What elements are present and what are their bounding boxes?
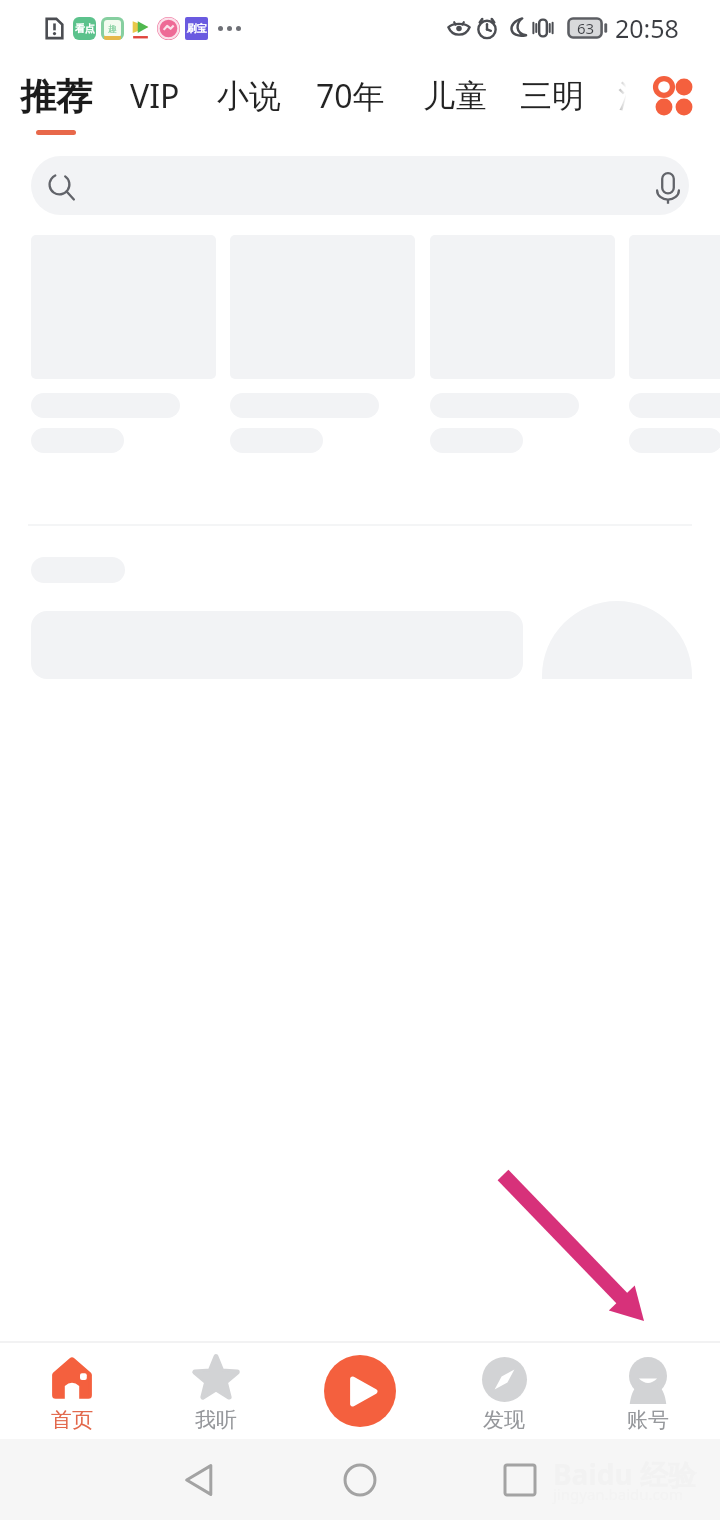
staticText: 我听: [195, 1407, 237, 1433]
staticText: 小说: [217, 76, 281, 116]
staticText: 账号: [627, 1407, 669, 1433]
button[interactable]: VIP: [107, 66, 203, 126]
button[interactable]: Categories: [642, 65, 706, 129]
button[interactable]: 推荐: [8, 66, 104, 126]
staticText: 看点: [75, 22, 95, 35]
button[interactable]: Back: [170, 1450, 230, 1510]
button[interactable]: Recents: [490, 1450, 550, 1510]
staticText: VIP: [130, 74, 180, 118]
staticText: 推荐: [20, 74, 92, 119]
staticText: 63: [577, 18, 595, 38]
staticText: 刷宝: [187, 22, 207, 35]
staticText: 70年: [316, 74, 385, 118]
button[interactable]: 漫画: [602, 66, 698, 126]
staticText: 漫画: [618, 76, 682, 116]
button[interactable]: 首页: [0, 1343, 144, 1439]
button[interactable]: 发现: [432, 1343, 576, 1439]
button[interactable]: 账号: [576, 1343, 720, 1439]
staticText: 儿童: [423, 76, 487, 116]
button[interactable]: 儿童: [407, 66, 503, 126]
staticText: 20:58: [615, 11, 679, 45]
button[interactable]: 三明: [504, 66, 600, 126]
button[interactable]: Play: [324, 1355, 396, 1427]
button[interactable]: 我听: [144, 1343, 288, 1439]
staticText: 三明: [520, 76, 584, 116]
button[interactable]: Home: [330, 1450, 390, 1510]
button[interactable]: 小说: [201, 66, 297, 126]
staticText: 首页: [51, 1407, 93, 1433]
staticText: 发现: [483, 1407, 525, 1433]
staticText: 趣: [108, 23, 117, 34]
button[interactable]: Search: [31, 156, 689, 215]
button[interactable]: 70年: [302, 66, 398, 126]
